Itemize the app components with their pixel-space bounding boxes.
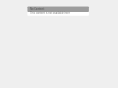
button[interactable] (27, 6, 89, 16)
